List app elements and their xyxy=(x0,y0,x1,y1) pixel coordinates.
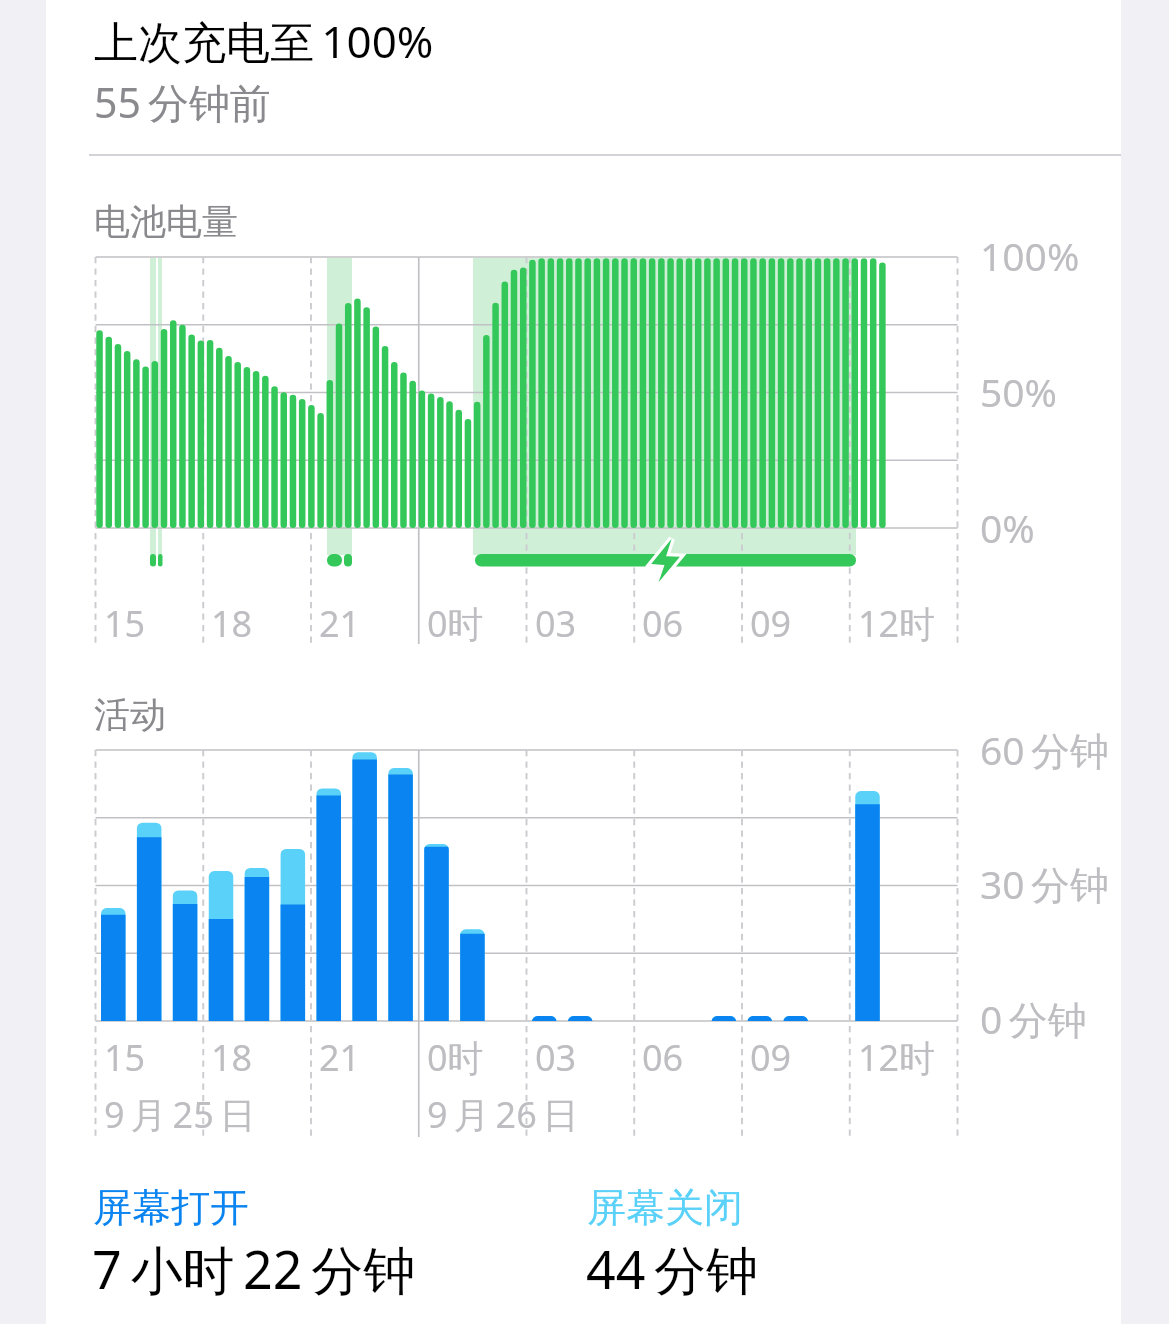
staticText: 03 xyxy=(535,599,577,648)
staticText: 活动 xyxy=(94,692,166,737)
staticText: 屏幕打开 xyxy=(93,1183,249,1232)
staticText: 09 xyxy=(750,1033,792,1082)
staticText: 7 小时 22 分钟 xyxy=(92,1233,416,1304)
staticText: 0% xyxy=(980,501,1035,554)
staticText: 100% xyxy=(980,229,1080,282)
staticText: 44 分钟 xyxy=(586,1233,759,1304)
staticText: 12时 xyxy=(858,599,936,648)
staticText: 15 xyxy=(104,1033,146,1082)
staticText: 18 xyxy=(211,1033,253,1082)
staticText: 30 分钟 xyxy=(980,857,1110,910)
staticText: 60 分钟 xyxy=(980,723,1110,776)
staticText: 06 xyxy=(642,1033,684,1082)
staticText: 0时 xyxy=(427,1033,484,1082)
staticText: 12时 xyxy=(858,1033,936,1082)
staticText: 0时 xyxy=(427,599,484,648)
button[interactable]: 屏幕关闭 xyxy=(586,1181,1080,1323)
staticText: 15 xyxy=(104,599,146,648)
staticText: 0 分钟 xyxy=(980,992,1087,1045)
staticText: 屏幕关闭 xyxy=(587,1183,743,1232)
staticText: 03 xyxy=(535,1033,577,1082)
staticText: 电池电量 xyxy=(94,199,238,244)
staticText: 21 xyxy=(319,1033,361,1082)
staticText: 06 xyxy=(642,599,684,648)
other: 电池电量与活动图表 xyxy=(46,0,1121,1324)
staticText: 09 xyxy=(750,599,792,648)
staticText: 21 xyxy=(319,599,361,648)
staticText: 55 分钟前 xyxy=(94,74,271,130)
button[interactable]: 屏幕打开 xyxy=(92,1181,586,1323)
staticText: 9 月 25 日 xyxy=(104,1090,256,1139)
staticText: 50% xyxy=(980,365,1058,418)
staticText: 18 xyxy=(211,599,253,648)
staticText: 9 月 26 日 xyxy=(427,1090,579,1139)
staticText: 上次充电至 100% xyxy=(94,11,434,71)
